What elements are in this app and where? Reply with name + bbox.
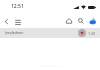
button[interactable]: Home (63, 15, 75, 27)
button[interactable]: Account (87, 15, 99, 27)
staticText: Jenny Anderson (5, 31, 23, 35)
button[interactable]: Back (1, 16, 12, 27)
staticText: 12:51 (11, 3, 24, 10)
button[interactable]: Search (75, 15, 87, 27)
staticText: 1.4K (88, 31, 96, 36)
button[interactable]: Menu (12, 16, 23, 27)
